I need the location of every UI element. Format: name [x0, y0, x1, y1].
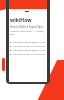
button[interactable]: Unfold and fold the corners to the centr… — [9, 52, 47, 56]
staticText: Fold the sheet of paper in half lengthwi… — [13, 49, 47, 52]
staticText: wikiHow — [10, 17, 32, 24]
staticText: Unfold and fold the corners to the centr… — [13, 53, 47, 56]
staticText: Unfold and fold the corners to the centr… — [13, 45, 47, 48]
button[interactable]: Fold the sheet of paper in half lengthwi… — [9, 40, 47, 44]
staticText: Updated: March 2024 · 15 steps · Easy — [10, 30, 47, 36]
staticText: Fold the sheet of paper in half lengthwi… — [13, 41, 47, 44]
button[interactable]: Unfold and fold the corners to the centr… — [9, 44, 47, 48]
staticText: How to Make a Paper Plane — [10, 25, 44, 29]
button[interactable]: Fold the sheet of paper in half lengthwi… — [9, 48, 47, 52]
